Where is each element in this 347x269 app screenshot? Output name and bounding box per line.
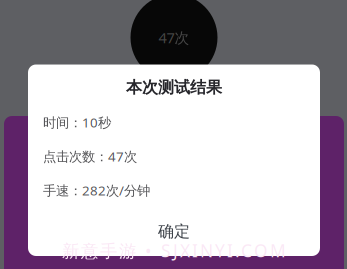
staticText: 本次测试结果 — [126, 77, 222, 97]
staticText: 手速：282次/分钟 — [43, 181, 150, 199]
staticText: 47次 — [158, 28, 189, 47]
staticText: 点击次数：47次 — [43, 147, 137, 165]
button[interactable]: 点击计数 — [130, 0, 217, 81]
staticText: 确定 — [158, 222, 190, 241]
staticText: 时间：10秒 — [43, 113, 111, 131]
staticText: 新意手游 • SJXINYI.COM — [62, 239, 286, 262]
button[interactable]: 确定 — [28, 212, 320, 250]
